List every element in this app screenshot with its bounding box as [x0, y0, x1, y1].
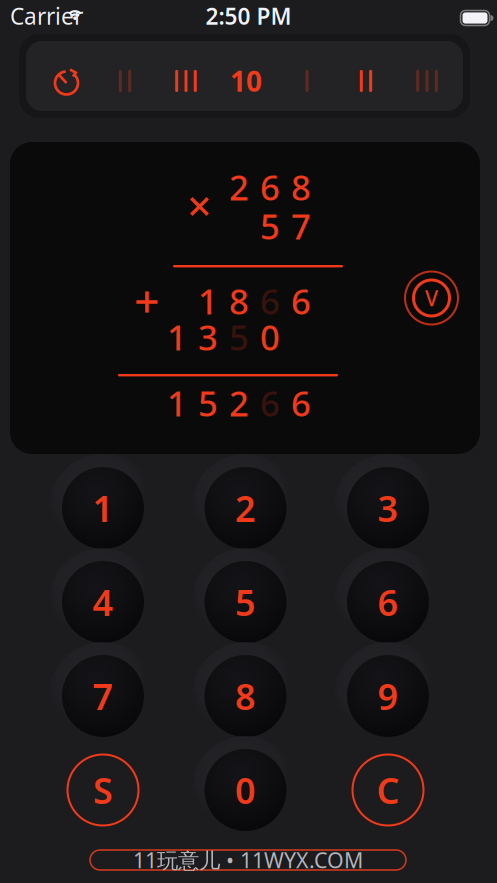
- button[interactable]: C: [344, 746, 432, 834]
- staticText: S: [93, 766, 113, 814]
- staticText: 5: [229, 314, 249, 360]
- staticText: 6: [291, 380, 311, 426]
- button[interactable]: 7: [59, 652, 147, 740]
- staticText: 0: [235, 766, 256, 814]
- staticText: 6: [260, 380, 280, 426]
- staticText: 2: [235, 484, 256, 532]
- staticText: 3: [377, 484, 398, 532]
- button[interactable]: 9: [344, 652, 432, 740]
- button[interactable]: 2: [201, 464, 289, 552]
- staticText: 1: [167, 380, 187, 426]
- staticText: 6: [291, 278, 311, 324]
- staticText: 11玩意儿 • 11WYX.COM: [133, 846, 363, 874]
- staticText: Carrier: [10, 1, 83, 31]
- staticText: 8: [229, 278, 249, 324]
- staticText: 5: [235, 578, 256, 626]
- staticText: 4: [92, 578, 113, 626]
- staticText: 3: [198, 314, 218, 360]
- button[interactable]: 5: [201, 558, 289, 646]
- button[interactable]: 3: [344, 464, 432, 552]
- staticText: 6: [260, 164, 280, 210]
- staticText: 1: [198, 278, 218, 324]
- staticText: 8: [291, 164, 311, 210]
- button[interactable]: S: [59, 746, 147, 834]
- button[interactable]: 1: [59, 464, 147, 552]
- staticText: 8: [235, 672, 256, 720]
- button[interactable]: 4: [59, 558, 147, 646]
- staticText: 1: [167, 314, 187, 360]
- staticText: 6: [377, 578, 398, 626]
- staticText: 5: [260, 203, 280, 249]
- staticText: 1: [92, 484, 113, 532]
- button[interactable]: 6: [344, 558, 432, 646]
- staticText: V: [425, 284, 438, 312]
- staticText: 2: [229, 164, 249, 210]
- button[interactable]: 0: [201, 746, 289, 834]
- staticText: 7: [92, 672, 113, 720]
- staticText: 2: [229, 380, 249, 426]
- staticText: 9: [377, 672, 398, 720]
- staticText: 2:50 PM: [205, 1, 291, 31]
- staticText: 7: [291, 203, 311, 249]
- button[interactable]: 8: [201, 652, 289, 740]
- staticText: 0: [260, 314, 280, 360]
- staticText: C: [376, 766, 399, 814]
- staticText: 5: [198, 380, 218, 426]
- staticText: 6: [260, 278, 280, 324]
- button[interactable]: Verify answer: [402, 269, 460, 327]
- staticText: 10: [230, 62, 262, 100]
